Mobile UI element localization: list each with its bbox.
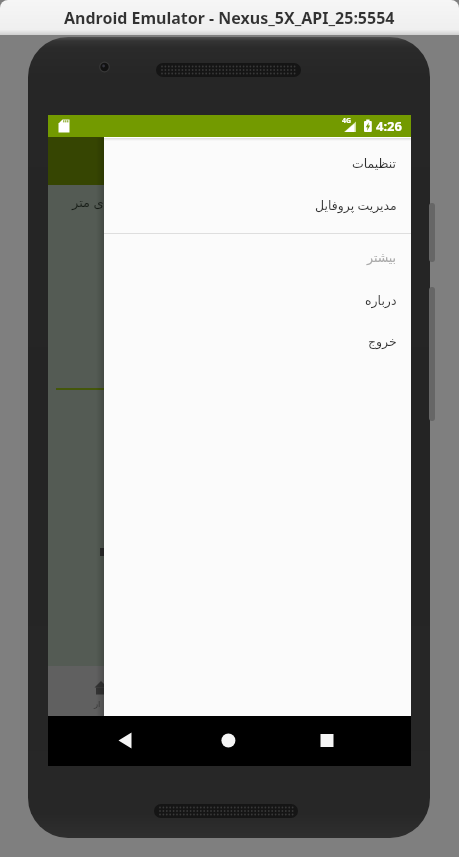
staticText: مدیریت پروفایل — [315, 197, 397, 214]
button[interactable]: بیشتر — [104, 236, 411, 278]
staticText: 4G — [342, 116, 352, 126]
button[interactable] — [198, 716, 258, 766]
button[interactable] — [297, 716, 357, 766]
button[interactable]: مدیریت پروفایل — [104, 184, 411, 226]
button[interactable]: تنظیمات — [104, 142, 411, 184]
staticText: درباره — [365, 293, 397, 308]
staticText: تنظیمات — [352, 156, 397, 171]
staticText: 4:26 — [376, 117, 402, 135]
staticText: Android Emulator - Nexus_5X_API_25:5554 — [64, 7, 395, 29]
button[interactable] — [94, 716, 154, 766]
button[interactable]: درباره — [104, 279, 411, 321]
button[interactable]: خروج — [104, 320, 411, 362]
staticText: ار — [94, 699, 101, 709]
staticText: ی متر — [72, 193, 104, 211]
staticText: بیشتر — [367, 250, 397, 265]
staticText: خروج — [368, 334, 397, 349]
